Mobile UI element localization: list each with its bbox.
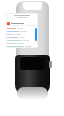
button[interactable] <box>7 42 34 45</box>
button[interactable]: Toolbar <box>7 21 37 25</box>
button[interactable] <box>7 45 34 48</box>
button[interactable] <box>7 39 34 42</box>
button[interactable]: Toolbar <box>6 13 38 48</box>
button[interactable] <box>7 27 34 30</box>
button[interactable] <box>7 30 34 33</box>
button[interactable]: Scrollbar <box>35 28 37 41</box>
button[interactable] <box>7 36 34 39</box>
button[interactable]: Crown <box>49 61 52 68</box>
button[interactable] <box>7 33 34 36</box>
